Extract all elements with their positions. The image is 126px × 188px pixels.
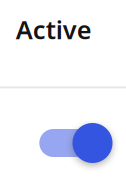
staticText: Active (16, 13, 92, 46)
button[interactable]: Active toggle (39, 123, 115, 163)
